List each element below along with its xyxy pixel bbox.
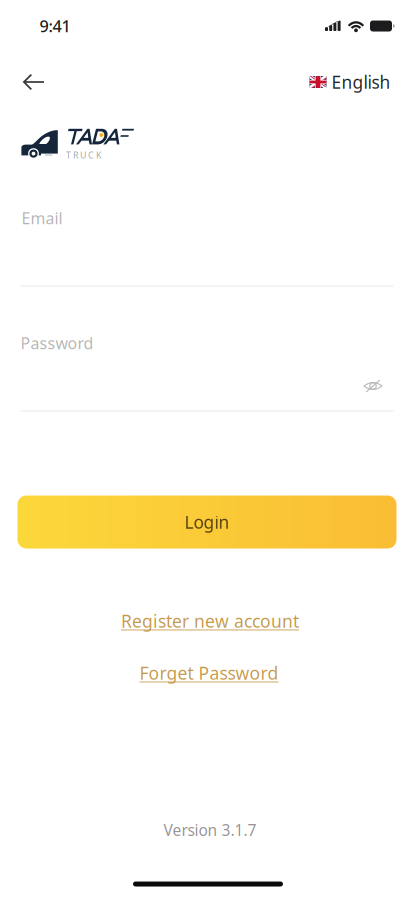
button[interactable]: Forget Password: [123, 653, 294, 693]
staticText: T R U C K: [66, 149, 101, 161]
staticText: Login: [184, 510, 229, 534]
staticText: English: [331, 70, 390, 94]
button[interactable]: Show password: [353, 368, 393, 404]
button[interactable]: Login: [17, 495, 396, 548]
button[interactable]: Back: [5, 60, 63, 104]
staticText: Forget Password: [139, 661, 278, 685]
staticText: 9:41: [39, 15, 70, 37]
button[interactable]: English: [299, 58, 400, 106]
staticText: Email: [21, 207, 62, 229]
staticText: Register new account: [121, 609, 299, 633]
button[interactable]: Register new account: [105, 601, 315, 641]
staticText: Password: [20, 332, 93, 354]
staticText: Version 3.1.7: [163, 819, 256, 841]
